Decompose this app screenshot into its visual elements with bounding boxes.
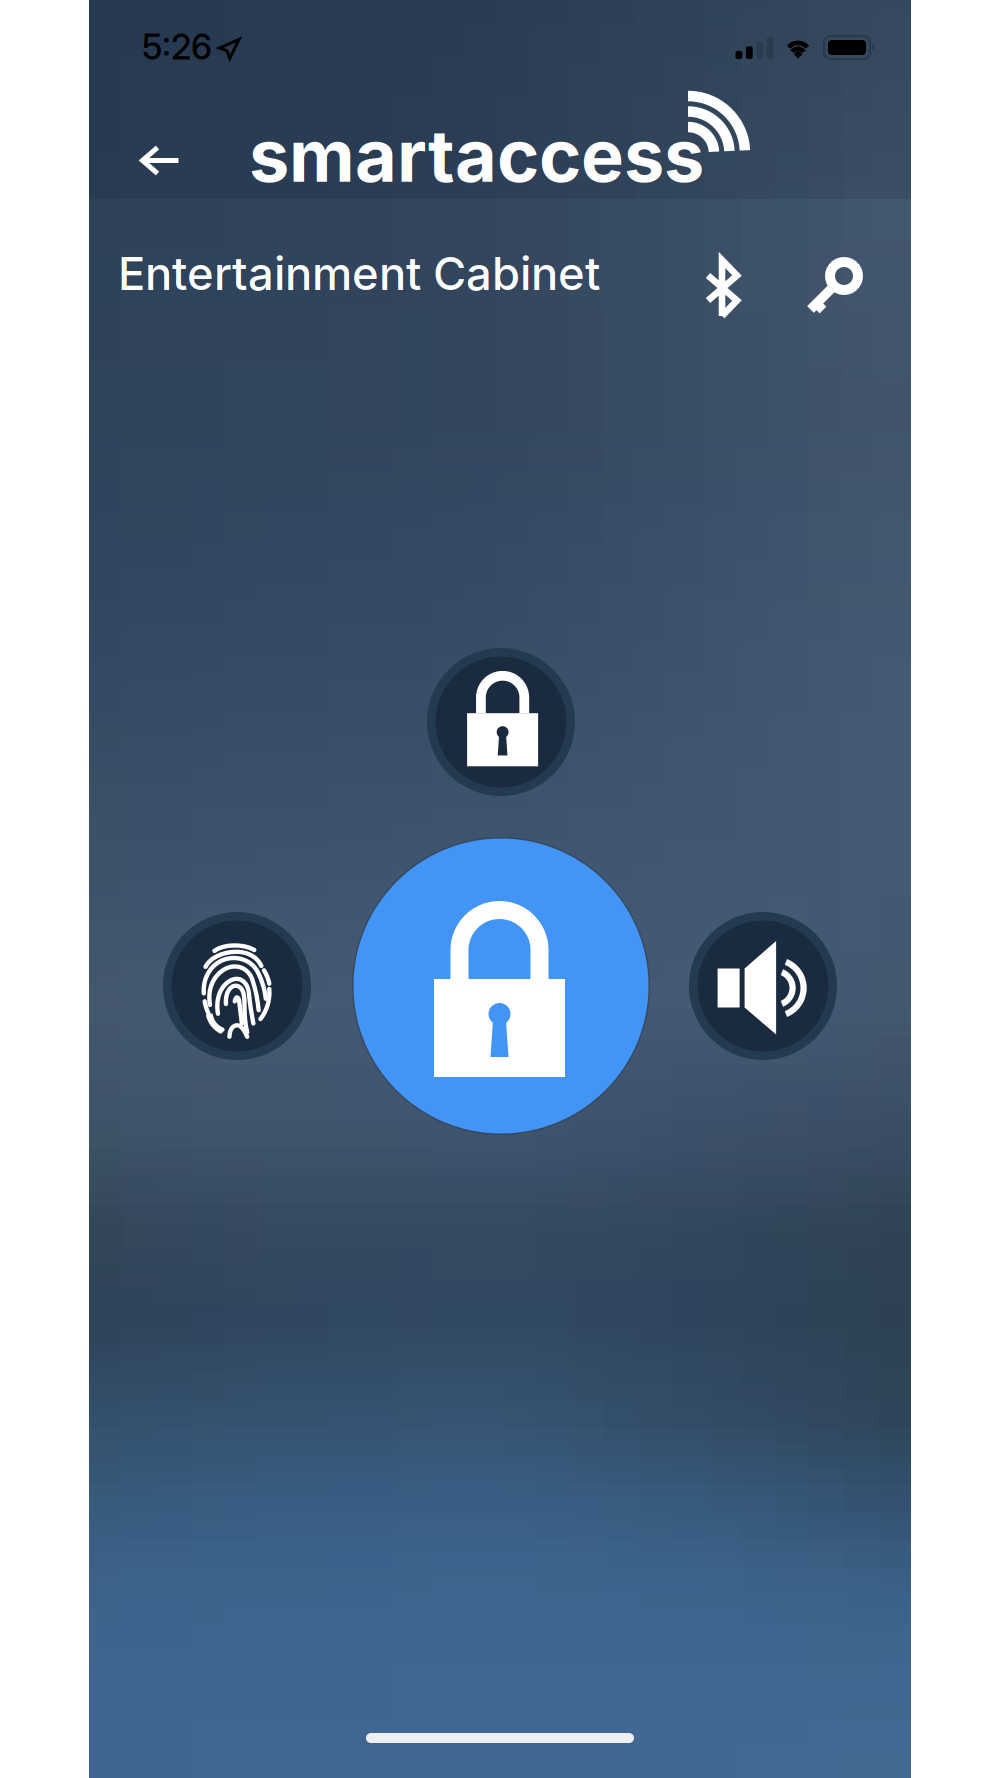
staticText: 5:26 bbox=[142, 26, 212, 68]
button[interactable]: Unlock with fingerprint bbox=[163, 912, 311, 1060]
button[interactable]: Sound bbox=[689, 912, 837, 1060]
button[interactable]: Keys bbox=[806, 258, 866, 316]
staticText: Entertainment Cabinet bbox=[118, 246, 600, 301]
button[interactable]: Lock or unlock bbox=[352, 837, 650, 1135]
staticText: smartaccess bbox=[249, 112, 704, 199]
button[interactable]: Lock status bbox=[427, 648, 575, 796]
button[interactable]: Back bbox=[140, 145, 181, 176]
button[interactable]: Bluetooth bbox=[704, 257, 741, 319]
